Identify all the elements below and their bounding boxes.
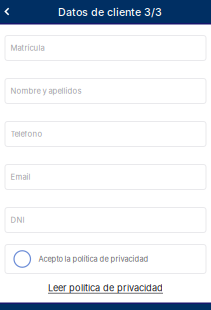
staticText: Nombre y apellidos: [10, 86, 81, 96]
staticText: Acepto la política de privacidad: [38, 254, 148, 263]
button[interactable]: Back: [0, 0, 14, 23]
staticText: Email: [10, 172, 30, 182]
staticText: Teléfono: [10, 129, 42, 139]
staticText: Datos de cliente 3/3: [58, 5, 162, 18]
button[interactable]: Matrícula: [5, 35, 206, 60]
staticText: Leer política de privacidad: [48, 282, 163, 293]
button[interactable]: Email: [5, 164, 206, 189]
button[interactable]: Nombre y apellidos: [5, 78, 206, 103]
staticText: DNI: [10, 215, 24, 225]
button[interactable]: Leer política de privacidad: [42, 279, 169, 296]
button[interactable]: DNI: [5, 207, 206, 232]
button[interactable]: Teléfono: [5, 121, 206, 146]
button[interactable]: Acepto la política de privacidad: [5, 244, 206, 273]
staticText: Matrícula: [10, 43, 44, 53]
